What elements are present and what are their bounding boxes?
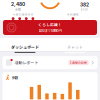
button[interactable]: くらし応援！ bbox=[0, 20, 100, 35]
button[interactable]: チャット bbox=[50, 38, 100, 51]
staticText: kcal bbox=[81, 8, 88, 11]
staticText: 1週間の記録 bbox=[70, 61, 87, 65]
staticText: 未読通知 bbox=[67, 12, 79, 16]
staticText: 翌月まで月額0円 bbox=[38, 28, 61, 33]
staticText: 活動レポート bbox=[14, 60, 38, 65]
staticText: 2,480 bbox=[11, 1, 25, 7]
button[interactable]: ダッシュボード bbox=[0, 38, 50, 51]
staticText: 382 bbox=[80, 2, 89, 8]
staticText: 歩数 bbox=[15, 7, 21, 12]
button[interactable]: 活動レポート bbox=[0, 56, 100, 69]
staticText: 今週の達成状況 bbox=[12, 12, 33, 16]
staticText: ダッシュボード bbox=[11, 44, 39, 50]
staticText: 歩数 bbox=[12, 75, 18, 80]
staticText: くらし応援！ bbox=[38, 22, 62, 27]
staticText: チャット bbox=[67, 44, 83, 50]
